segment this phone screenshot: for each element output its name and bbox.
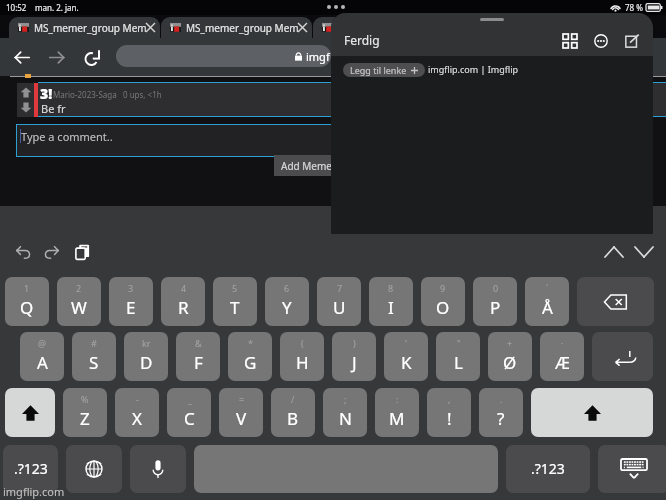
button[interactable]: * — [228, 332, 272, 381]
button[interactable]: .?123 — [3, 445, 58, 493]
button[interactable]: Compose — [619, 28, 644, 53]
button[interactable]: Reload — [75, 41, 110, 73]
staticText: W — [71, 296, 87, 319]
button[interactable]: 3 — [109, 277, 153, 326]
button[interactable]: kr — [124, 332, 168, 381]
button[interactable]: # — [72, 332, 116, 381]
button[interactable]: - — [115, 388, 159, 437]
button[interactable]: Voice input — [130, 445, 186, 493]
staticText: A — [37, 351, 48, 374]
staticText: - — [136, 393, 139, 405]
button[interactable]: " — [436, 332, 480, 381]
staticText: ' — [405, 337, 408, 349]
button[interactable]: ; — [323, 388, 367, 437]
staticText: S — [89, 351, 99, 374]
staticText: 5 — [232, 282, 238, 294]
button[interactable]: Redo — [37, 238, 65, 266]
button[interactable]: : — [375, 388, 419, 437]
staticText: , — [448, 393, 451, 405]
button[interactable]: & — [176, 332, 220, 381]
button[interactable]: MS_memer_group Memes — [161, 17, 312, 38]
staticText: B — [287, 407, 299, 430]
button[interactable]: , — [427, 388, 471, 437]
button[interactable]: MS_memer_group Memes — [313, 17, 464, 38]
staticText: G — [244, 351, 257, 374]
staticText: 9 — [440, 282, 446, 294]
button[interactable]: MS_memer_group Memes — [9, 17, 160, 38]
button[interactable]: 6 — [265, 277, 309, 326]
staticText: U — [333, 296, 346, 319]
staticText: Type a comment.. — [21, 129, 113, 144]
staticText: MS_memer_group Memes — [34, 21, 146, 35]
staticText: # — [91, 337, 97, 349]
button[interactable] — [194, 445, 498, 493]
staticText: Y — [282, 296, 292, 319]
staticText: 78 % — [625, 2, 643, 13]
button[interactable]: Change language — [66, 445, 122, 493]
button[interactable]: 7 — [317, 277, 361, 326]
staticText: man. 2. jan. — [35, 2, 79, 13]
button[interactable]: . — [479, 388, 523, 437]
button[interactable]: 0 — [473, 277, 517, 326]
button[interactable]: Close tab — [141, 18, 160, 37]
button[interactable]: Hide keyboard — [598, 445, 666, 493]
button[interactable]: 9 — [421, 277, 465, 326]
staticText: ( — [301, 337, 304, 349]
button[interactable]: @ — [20, 332, 64, 381]
staticText: 6 — [284, 282, 290, 294]
button[interactable]: .?123 — [506, 445, 590, 493]
button[interactable]: 8 — [369, 277, 413, 326]
button[interactable]: _ — [167, 388, 211, 437]
button[interactable]: 5 — [213, 277, 257, 326]
staticText: 10:52 — [6, 2, 27, 13]
button[interactable]: Shift — [5, 388, 55, 437]
staticText: 2 — [76, 282, 82, 294]
staticText: R — [178, 296, 189, 319]
button[interactable]: Back — [4, 41, 39, 73]
button[interactable]: Previous — [600, 238, 628, 266]
staticText: & — [195, 337, 202, 349]
button[interactable]: ( — [280, 332, 324, 381]
staticText: imgf — [306, 49, 330, 64]
staticText: O — [436, 296, 450, 319]
button[interactable]: ) — [332, 332, 376, 381]
button[interactable]: Paste — [68, 238, 96, 266]
button[interactable]: ' — [384, 332, 428, 381]
button[interactable]: Enter — [592, 332, 653, 381]
button[interactable]: More options — [588, 28, 613, 53]
button[interactable]: = — [219, 388, 263, 437]
staticText: Z — [80, 407, 90, 430]
button[interactable]: Next — [630, 238, 658, 266]
staticText: 8 — [388, 282, 394, 294]
button[interactable]: Add Meme — [274, 155, 346, 176]
staticText: K — [401, 351, 412, 374]
button[interactable]: ´ — [525, 277, 569, 326]
button[interactable]: Forward — [39, 41, 74, 73]
staticText: ´ — [546, 282, 549, 294]
button[interactable]: 1 — [5, 277, 49, 326]
staticText: Mario-2023-Saga — [53, 89, 117, 100]
button[interactable]: + — [488, 332, 532, 381]
staticText: .?123 — [14, 459, 48, 478]
button[interactable]: Grid view — [557, 28, 582, 53]
staticText: H — [296, 351, 309, 374]
staticText: 4 — [181, 282, 187, 294]
staticText: + — [507, 337, 513, 349]
button[interactable]: imgf — [116, 45, 331, 67]
staticText: . — [500, 393, 503, 405]
button[interactable]: · — [540, 332, 584, 381]
button[interactable]: % — [63, 388, 107, 437]
button[interactable]: Undo — [9, 238, 37, 266]
button[interactable]: / — [271, 388, 315, 437]
button[interactable]: Close tab — [293, 18, 312, 37]
button[interactable]: 4 — [161, 277, 205, 326]
button[interactable]: Shift — [531, 388, 653, 437]
staticText: Legg til lenke — [350, 64, 407, 76]
button[interactable]: Ferdig — [331, 32, 380, 48]
button[interactable]: 2 — [57, 277, 101, 326]
button[interactable]: Backspace — [577, 277, 654, 326]
button[interactable]: Legg til lenke — [343, 63, 425, 77]
staticText: 3 — [128, 282, 134, 294]
